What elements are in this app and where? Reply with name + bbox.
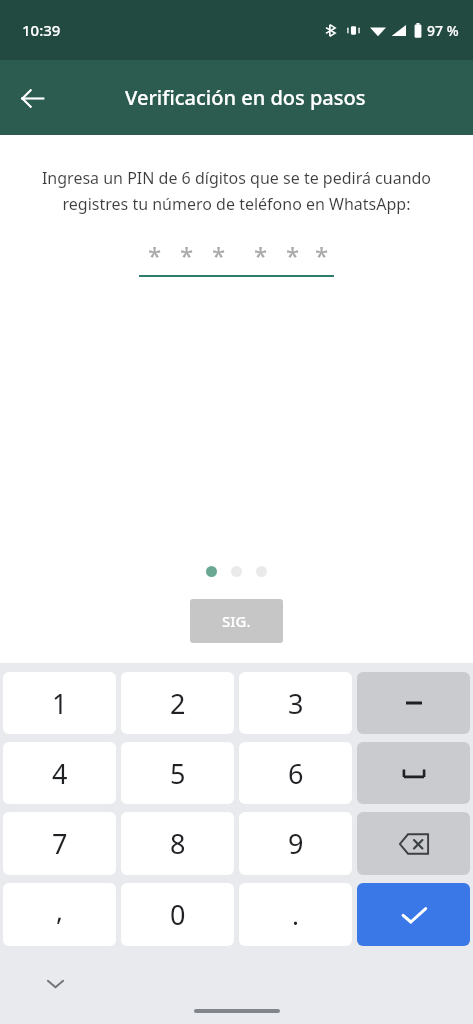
button[interactable]: 7 [3, 812, 116, 875]
staticText: 10:39 [22, 20, 61, 40]
staticText: 8 [170, 825, 186, 862]
staticText: 2 [170, 685, 186, 722]
staticText: 4 [52, 755, 68, 792]
button[interactable]: Dash [357, 672, 470, 734]
staticText: 5 [170, 755, 186, 792]
staticText: 7 [52, 825, 68, 862]
staticText: 1 [52, 685, 68, 722]
staticText: * [286, 239, 300, 269]
button[interactable]: 2 [121, 672, 234, 734]
staticText: 0 [170, 896, 186, 933]
button[interactable]: 4 [3, 742, 116, 804]
staticText: * [254, 239, 268, 269]
button[interactable]: Space [357, 742, 470, 804]
button[interactable]: Hide keyboard [34, 963, 76, 1005]
staticText: * [148, 239, 162, 269]
button[interactable]: 1 [3, 672, 116, 734]
staticText: Verificación en dos pasos [125, 84, 366, 111]
staticText: 9 [288, 825, 304, 862]
button[interactable]: Enter [357, 883, 470, 946]
button[interactable]: , [3, 883, 116, 946]
button[interactable]: Backspace [357, 812, 470, 875]
staticText: SIG. [222, 611, 251, 631]
staticText: * [212, 239, 226, 269]
button[interactable]: 5 [121, 742, 234, 804]
staticText: 97 % [427, 21, 459, 40]
staticText: Ingresa un PIN de 6 dígitos que se te pe… [26, 167, 447, 215]
staticText: * [315, 239, 329, 269]
button[interactable]: 6 [239, 742, 352, 804]
button[interactable]: . [239, 883, 352, 946]
button[interactable]: 3 [239, 672, 352, 734]
button[interactable]: SIG. [190, 599, 283, 643]
button[interactable]: 9 [239, 812, 352, 875]
button[interactable]: 0 [121, 883, 234, 946]
staticText: 6 [288, 755, 304, 792]
staticText: * [180, 239, 194, 269]
button[interactable]: Back [8, 74, 56, 122]
staticText: . [292, 897, 299, 932]
staticText: 3 [288, 685, 304, 722]
staticText: , [56, 893, 63, 928]
button[interactable]: 8 [121, 812, 234, 875]
